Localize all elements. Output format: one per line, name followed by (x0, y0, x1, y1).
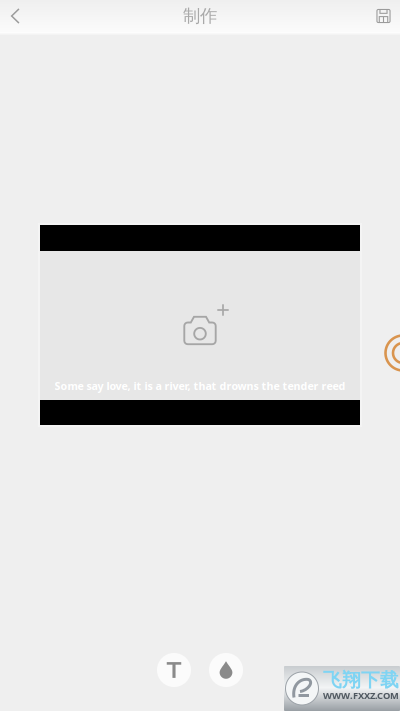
button[interactable]: Back (0, 0, 31, 32)
staticText: 飞翔下载 (323, 668, 399, 691)
button[interactable]: Save (367, 0, 400, 32)
staticText: WWW.FXXZ.COM (323, 689, 399, 702)
staticText: 制作 (183, 5, 217, 27)
staticText: Some say love, it is a river, that drown… (54, 379, 345, 393)
button[interactable]: Add text (157, 653, 191, 687)
button[interactable]: Add photo (165, 293, 235, 357)
button[interactable]: Adjust colour (209, 653, 243, 687)
